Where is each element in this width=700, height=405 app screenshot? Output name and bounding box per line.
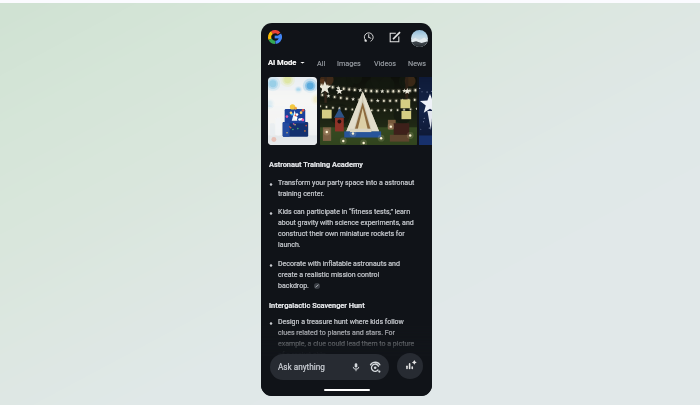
staticText: Ask anything [278, 362, 325, 372]
staticText: Design a treasure hunt where kids follow… [278, 318, 425, 359]
button[interactable]: News [403, 57, 431, 68]
button[interactable]: Videos [371, 57, 399, 68]
staticText: Transform your party space into a astron… [278, 179, 425, 198]
button[interactable]: History [363, 32, 374, 43]
button[interactable]: Voice search [351, 362, 361, 372]
button[interactable]: AI Mode [268, 57, 305, 68]
button[interactable]: All [307, 57, 335, 68]
button[interactable]: Google [268, 30, 282, 44]
staticText: Images [337, 59, 361, 67]
staticText: Kids can participate in “fitness tests,”… [278, 208, 425, 249]
button[interactable]: Google Lens [370, 362, 381, 373]
staticText: Decorate with inflatable astronauts and … [278, 260, 425, 290]
button[interactable]: Image [320, 77, 417, 145]
staticText: Videos [374, 59, 396, 67]
button[interactable]: Image [419, 77, 432, 145]
button[interactable]: Live [397, 353, 423, 379]
staticText: Intergalactic Scavenger Hunt [269, 301, 365, 310]
button[interactable]: Ask anything [270, 354, 389, 380]
button[interactable]: Image [268, 77, 317, 145]
staticText: News [408, 59, 427, 67]
button[interactable]: Images [335, 57, 363, 68]
button[interactable]: Compose [389, 32, 400, 43]
staticText: AI Mode [268, 58, 297, 67]
staticText: All [317, 59, 326, 67]
button[interactable]: Account [411, 30, 428, 47]
staticText: Astronaut Training Academy [269, 160, 363, 169]
